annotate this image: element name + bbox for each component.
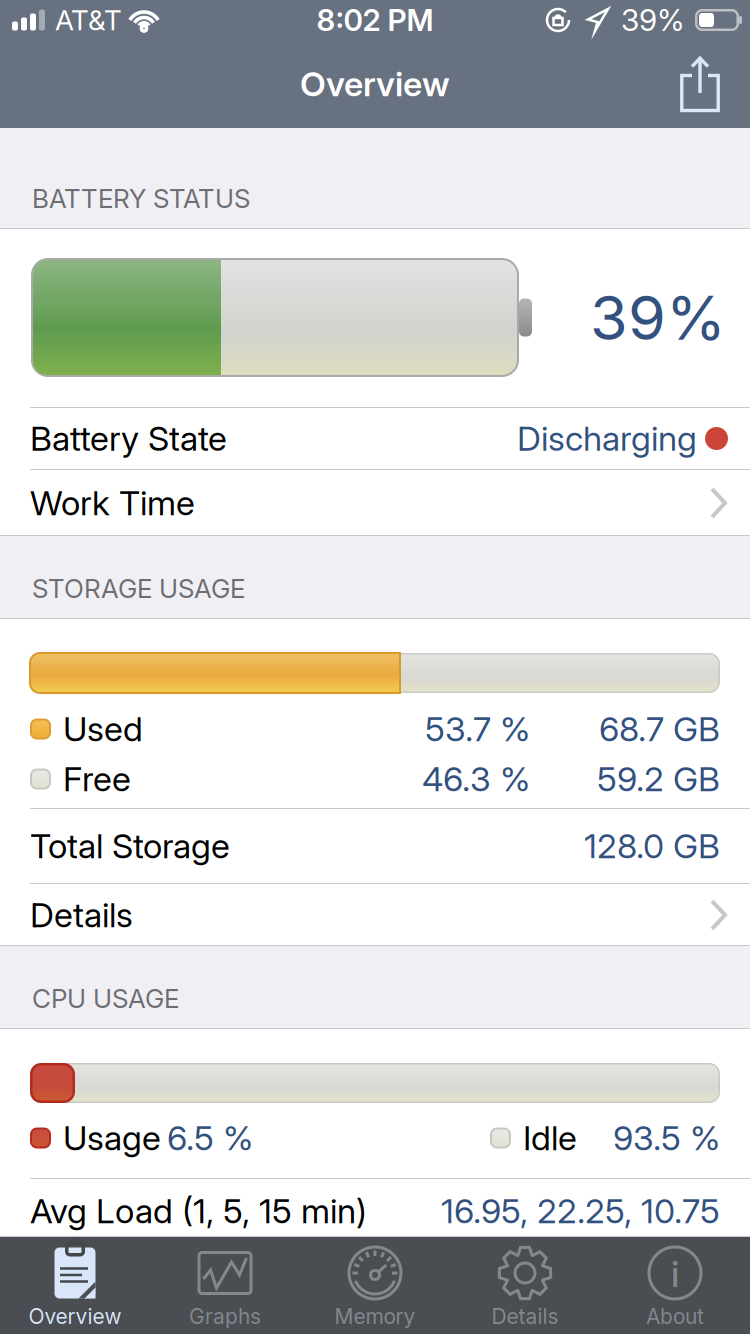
staticText: 39% xyxy=(590,281,726,353)
staticText: 8:02 PM xyxy=(316,2,433,38)
button[interactable]: Share xyxy=(666,48,750,120)
staticText: 59.2 GB xyxy=(597,759,720,799)
staticText: Idle xyxy=(523,1118,577,1158)
staticText: 6.5 % xyxy=(167,1118,253,1158)
button[interactable]: Work Time xyxy=(0,470,750,536)
staticText: 68.7 GB xyxy=(599,709,720,749)
staticText: Details xyxy=(30,895,133,935)
staticText: 16.95, 22.25, 10.75 xyxy=(441,1191,720,1231)
staticText: BATTERY STATUS xyxy=(32,183,250,214)
button[interactable]: Details xyxy=(0,884,750,946)
button[interactable]: Details xyxy=(450,1237,600,1334)
staticText: Usage xyxy=(63,1118,161,1158)
staticText: Work Time xyxy=(30,483,195,523)
staticText: Used xyxy=(63,709,143,749)
staticText: 46.3 % xyxy=(422,759,530,799)
button[interactable]: Memory xyxy=(300,1237,450,1334)
staticText: 93.5 % xyxy=(613,1118,720,1158)
staticText: Graphs xyxy=(189,1304,261,1329)
staticText: AT&T xyxy=(55,3,122,36)
staticText: 53.7 % xyxy=(425,709,530,749)
staticText: Total Storage xyxy=(30,826,230,866)
button[interactable]: Overview xyxy=(0,1237,150,1334)
staticText: Free xyxy=(63,759,131,799)
staticText: i xyxy=(671,1253,679,1295)
staticText: About xyxy=(646,1304,704,1329)
staticText: Discharging xyxy=(517,418,697,458)
staticText: Details xyxy=(491,1304,558,1329)
button[interactable]: Graphs xyxy=(150,1237,300,1334)
staticText: CPU USAGE xyxy=(32,983,179,1014)
staticText: 128.0 GB xyxy=(584,826,720,866)
staticText: Overview xyxy=(28,1304,121,1329)
staticText: 39% xyxy=(621,2,684,38)
button[interactable]: i xyxy=(600,1237,750,1334)
staticText: Battery State xyxy=(30,418,227,458)
staticText: Memory xyxy=(334,1304,415,1329)
staticText: Overview xyxy=(300,64,450,104)
staticText: Avg Load (1, 5, 15 min) xyxy=(30,1191,367,1231)
staticText: STORAGE USAGE xyxy=(32,573,245,604)
